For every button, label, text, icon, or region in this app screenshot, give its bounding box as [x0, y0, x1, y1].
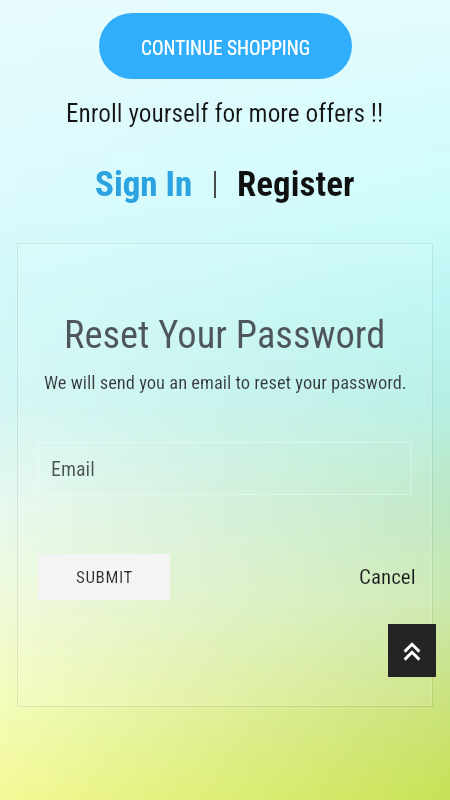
staticText: Email [51, 457, 95, 480]
button[interactable]: Cancel [355, 554, 419, 600]
staticText: Enroll yourself for more offers !! [66, 99, 384, 129]
staticText: CONTINUE SHOPPING [141, 37, 311, 60]
button[interactable]: Register [237, 164, 355, 205]
button[interactable]: CONTINUE SHOPPING [99, 13, 352, 79]
button[interactable]: Scroll to top [388, 624, 436, 677]
button[interactable]: SUBMIT [38, 554, 170, 600]
button[interactable]: Sign In [95, 164, 193, 205]
staticText: We will send you an email to reset your … [44, 372, 407, 394]
staticText: Reset Your Password [64, 312, 386, 357]
staticText: Cancel [359, 565, 416, 590]
button[interactable]: Email [38, 442, 412, 495]
staticText: SUBMIT [76, 567, 133, 587]
